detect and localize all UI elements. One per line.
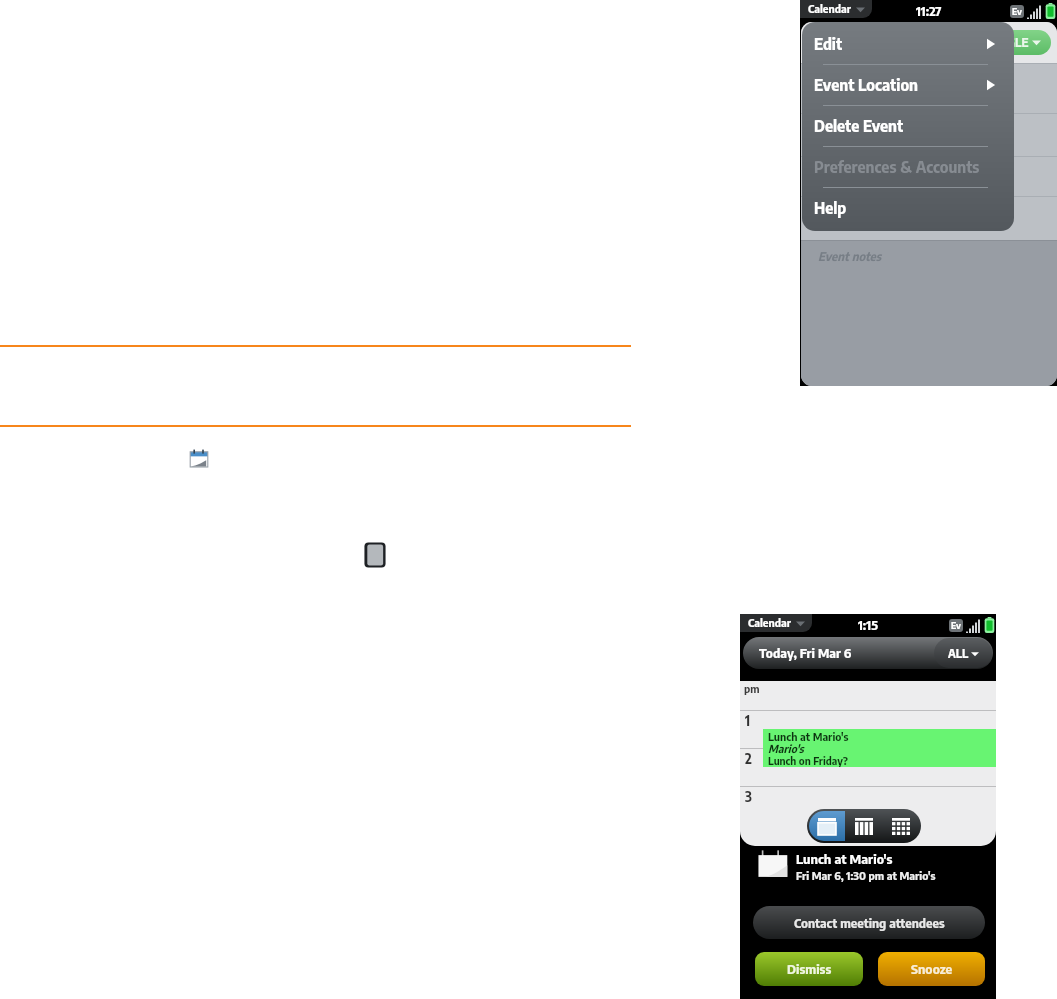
button[interactable]: GLE <box>997 30 1051 55</box>
staticText: Event notes <box>818 249 882 264</box>
button[interactable]: Calendar <box>748 614 805 632</box>
staticText: Help <box>814 198 847 218</box>
button[interactable]: Calendar <box>808 0 865 18</box>
staticText: Delete Event <box>814 116 904 136</box>
button[interactable]: Week view <box>845 811 882 841</box>
button[interactable]: Help <box>802 188 1014 228</box>
staticText: Snooze <box>911 961 953 977</box>
staticText: Ev <box>1012 6 1022 17</box>
button[interactable]: ALL <box>934 638 992 668</box>
button[interactable]: Contact meeting attendees <box>753 906 985 939</box>
button[interactable]: Lunch at Mario's Mario's Lunch on Friday… <box>763 729 996 767</box>
staticText: 1:15 <box>858 617 878 633</box>
staticText: Calendar <box>808 2 851 16</box>
staticText: GLE <box>1007 35 1029 50</box>
staticText: 11:27 <box>916 3 942 19</box>
staticText: Contact meeting attendees <box>794 915 945 931</box>
staticText: 2 <box>745 750 752 767</box>
button[interactable]: Edit <box>802 24 1014 64</box>
staticText: Edit <box>814 34 843 54</box>
button[interactable]: Day view <box>809 811 845 841</box>
staticText: ALL <box>948 646 969 661</box>
button[interactable]: Today, Fri Mar 6 <box>743 637 993 669</box>
staticText: Calendar <box>748 616 791 630</box>
staticText: pm <box>744 682 760 696</box>
staticText: Event Location <box>814 75 919 95</box>
staticText: Preferences & Accounts <box>814 157 980 177</box>
button[interactable]: Snooze <box>878 952 985 986</box>
staticText: 3 <box>745 788 752 805</box>
staticText: Today, Fri Mar 6 <box>759 645 852 661</box>
staticText: Lunch at Mario's <box>796 850 893 866</box>
staticText: 1 <box>745 712 751 729</box>
button[interactable]: Event Location <box>802 65 1014 105</box>
staticText: Dismiss <box>787 961 832 977</box>
button[interactable]: Month view <box>882 811 919 841</box>
button[interactable]: Preferences & Accounts <box>802 147 1014 187</box>
button[interactable]: Dismiss <box>755 952 863 986</box>
button[interactable]: Delete Event <box>802 106 1014 146</box>
staticText: Lunch at Mario's Mario's Lunch on Friday… <box>768 730 849 767</box>
staticText: Fri Mar 6, 1:30 pm at Mario's <box>796 869 936 883</box>
staticText: Ev <box>951 620 961 631</box>
